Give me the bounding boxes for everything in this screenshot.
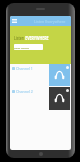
staticText: Channel 2 <box>16 89 33 94</box>
button[interactable]: HOW LISTEN EVERYWHERE WORKS <box>14 44 43 50</box>
staticText: EVERYWHERE <box>25 34 49 41</box>
staticText: Channel 1 <box>16 66 33 71</box>
staticText: Listen <box>14 34 25 41</box>
staticText: Listen Everywhere <box>34 19 66 24</box>
button[interactable]: Channel 1 <box>10 64 71 86</box>
button[interactable]: Channel 2 <box>10 87 71 110</box>
button[interactable]: Open navigation menu <box>10 16 19 26</box>
staticText: HOW LISTEN EVERYWHERE WORKS <box>14 46 43 49</box>
